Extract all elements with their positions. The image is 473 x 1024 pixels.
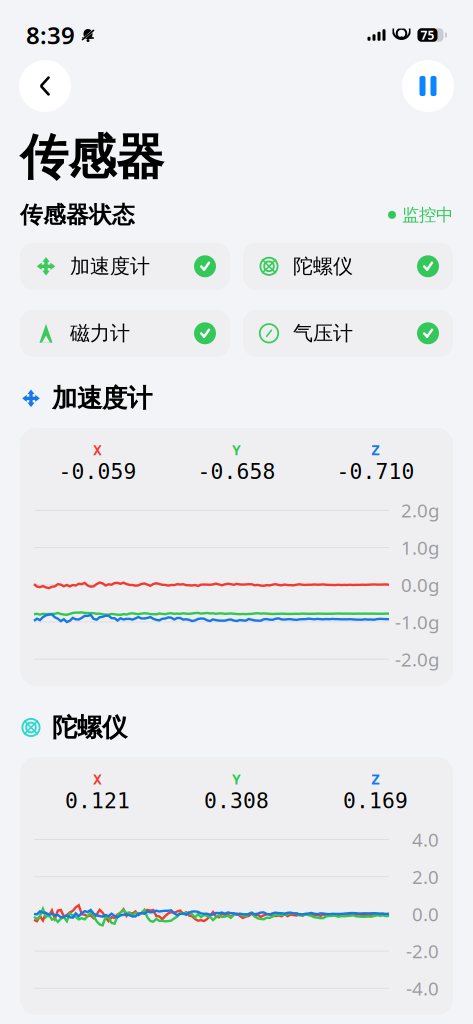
staticText: 0.0g <box>401 572 439 597</box>
staticText: 传感器状态 <box>20 201 135 229</box>
staticText: Y <box>232 771 241 788</box>
staticText: 监控中 <box>402 204 453 225</box>
staticText: 气压计 <box>293 321 353 346</box>
staticText: 1.0g <box>401 535 439 560</box>
button[interactable]: 暂停 <box>402 60 454 112</box>
staticText: 0.0 <box>412 901 439 926</box>
staticText: 2.0 <box>412 864 439 889</box>
staticText: 2.0g <box>401 498 439 523</box>
staticText: 传感器 <box>20 128 164 187</box>
staticText: -1.0g <box>395 610 439 634</box>
staticText: Z <box>371 771 380 788</box>
button[interactable]: 陀螺仪 <box>243 243 453 290</box>
button[interactable]: 返回 <box>19 60 71 112</box>
staticText: 加速度计 <box>52 383 152 414</box>
staticText: 磁力计 <box>70 321 130 346</box>
button[interactable]: 磁力计 <box>20 310 230 357</box>
staticText: 陀螺仪 <box>293 254 353 279</box>
button[interactable]: 气压计 <box>243 310 453 357</box>
staticText: X <box>93 771 102 788</box>
staticText: -0.710 <box>336 460 414 484</box>
staticText: -0.658 <box>197 460 275 484</box>
staticText: 4.0 <box>412 827 439 852</box>
staticText: 加速度计 <box>70 254 150 279</box>
staticText: -2.0 <box>406 939 439 963</box>
staticText: 陀螺仪 <box>52 712 127 743</box>
staticText: -2.0g <box>395 647 439 672</box>
staticText: 0.169 <box>343 789 408 813</box>
staticText: Y <box>232 442 241 458</box>
staticText: 0.121 <box>65 789 130 813</box>
staticText: 0.308 <box>204 789 269 813</box>
button[interactable]: 加速度计 <box>20 243 230 290</box>
staticText: 75 <box>420 27 434 43</box>
staticText: X <box>93 442 102 458</box>
staticText: 8:39 <box>26 19 75 51</box>
staticText: -4.0 <box>406 976 439 1001</box>
staticText: -0.059 <box>58 460 136 484</box>
staticText: Z <box>371 442 380 458</box>
